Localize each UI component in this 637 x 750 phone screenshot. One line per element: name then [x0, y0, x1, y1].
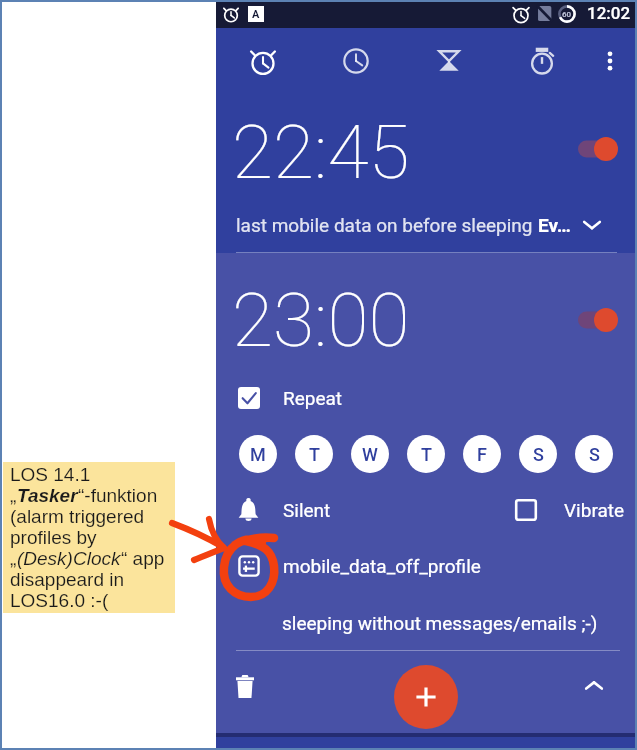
staticText: “ app: [121, 548, 165, 569]
button[interactable]: Collapse alarm: [572, 664, 616, 708]
staticText: Vibrate: [564, 499, 625, 521]
staticText: profiles by: [10, 527, 97, 548]
staticText: Silent: [283, 499, 331, 521]
button[interactable]: S: [575, 435, 613, 473]
staticText: S: [589, 444, 600, 465]
button[interactable]: T: [295, 435, 333, 473]
button[interactable]: M: [239, 435, 277, 473]
staticText: “-funktion: [78, 485, 158, 506]
staticText: „: [10, 548, 17, 569]
button[interactable]: Delete alarm: [223, 664, 267, 708]
staticText: LOS 14.1: [10, 464, 91, 485]
staticText: disappeard in: [10, 569, 125, 590]
staticText: 60: [562, 10, 572, 19]
button[interactable]: Silent: [238, 488, 331, 532]
button[interactable]: Stopwatch: [495, 28, 588, 94]
staticText: mobile_data_off_profile: [283, 555, 481, 577]
button[interactable]: 22:45: [216, 94, 635, 252]
button[interactable]: Toggle alarm on/off: [578, 305, 628, 335]
staticText: Tasker: [17, 485, 78, 506]
staticText: W: [362, 444, 378, 465]
staticText: Ev…: [538, 214, 571, 236]
staticText: 23:00: [232, 276, 410, 364]
staticText: last mobile data on before sleeping: [236, 214, 538, 236]
button[interactable]: Vibrate: [515, 488, 625, 532]
staticText: Repeat: [283, 387, 343, 409]
staticText: 12:02: [587, 3, 631, 23]
button[interactable]: F: [463, 435, 501, 473]
staticText: T: [421, 444, 432, 465]
button[interactable]: Timer: [402, 28, 495, 94]
staticText: S: [533, 444, 544, 465]
staticText: (alarm triggered: [10, 506, 145, 527]
button[interactable]: T: [407, 435, 445, 473]
staticText: LOS16.0 :-(: [10, 590, 109, 611]
button[interactable]: sleeping without messages/emails ;-): [282, 605, 598, 641]
button[interactable]: Add alarm: [394, 665, 458, 729]
staticText: M: [250, 444, 266, 465]
button[interactable]: S: [519, 435, 557, 473]
staticText: „: [10, 485, 17, 506]
button[interactable]: Repeat: [216, 373, 635, 423]
button[interactable]: Toggle alarm on/off: [578, 134, 628, 164]
button[interactable]: W: [351, 435, 389, 473]
button[interactable]: Clock: [309, 28, 402, 94]
staticText: sleeping without messages/emails ;-): [282, 612, 598, 634]
button[interactable]: mobile_data_off_profile: [238, 544, 481, 588]
staticText: A: [252, 8, 260, 21]
button[interactable]: Expand alarm: [572, 204, 612, 244]
button[interactable]: Alarm: [216, 28, 309, 94]
staticText: T: [309, 444, 320, 465]
staticText: (Desk)Clock: [17, 548, 121, 569]
button[interactable]: More options: [590, 28, 630, 94]
staticText: F: [477, 444, 487, 465]
staticText: 22:45: [232, 108, 410, 196]
